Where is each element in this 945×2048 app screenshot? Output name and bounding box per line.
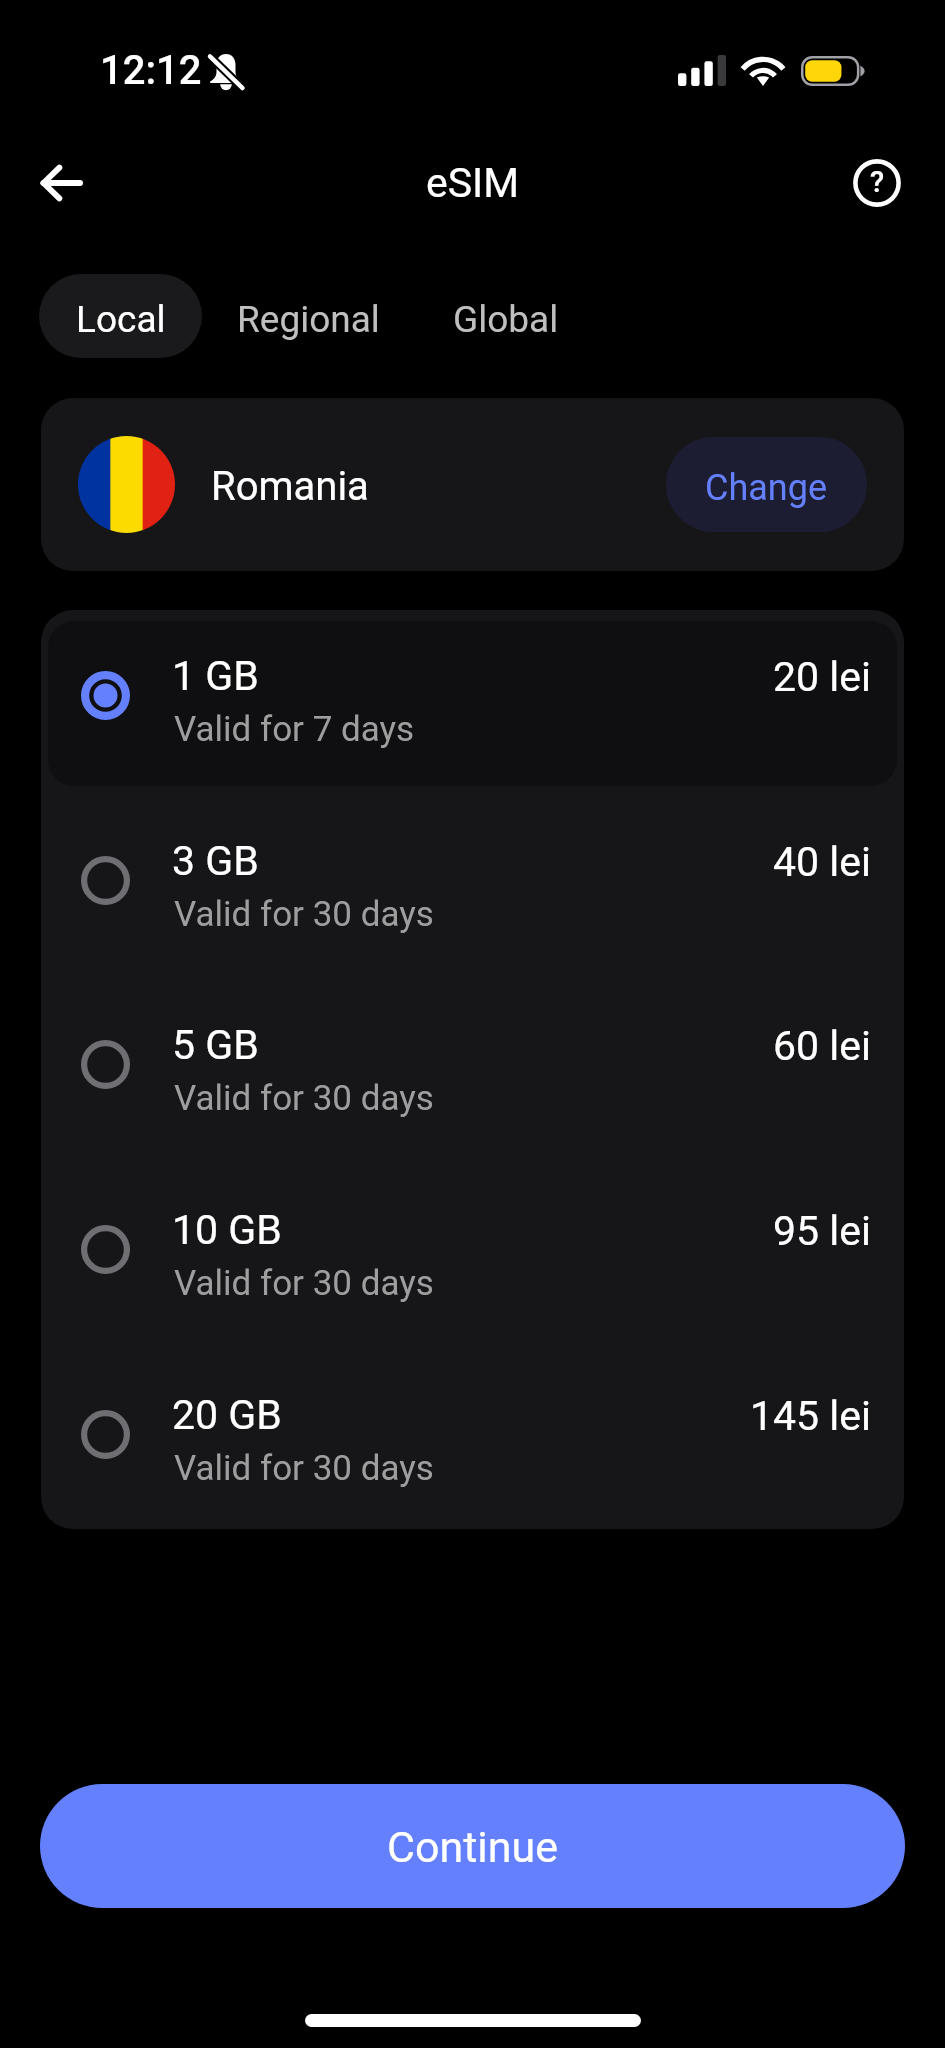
staticText: Global xyxy=(453,298,559,341)
staticText: Change xyxy=(705,467,828,509)
button[interactable]: Romania xyxy=(41,398,904,571)
staticText: Valid for 30 days xyxy=(174,1448,434,1489)
button[interactable]: Continue xyxy=(40,1784,905,1908)
staticText: 5 GB xyxy=(172,1021,259,1069)
staticText: Valid for 30 days xyxy=(174,894,434,935)
staticText: Romania xyxy=(211,463,369,510)
button[interactable]: Change xyxy=(666,437,867,532)
staticText: 40 lei xyxy=(773,838,871,886)
staticText: 20 lei xyxy=(773,653,871,701)
staticText: 95 lei xyxy=(773,1207,871,1255)
staticText: Valid for 7 days xyxy=(174,709,415,750)
button[interactable]: Help xyxy=(841,147,913,219)
staticText: 60 lei xyxy=(773,1022,871,1070)
staticText: Valid for 30 days xyxy=(174,1263,434,1304)
staticText: Regional xyxy=(237,298,380,341)
staticText: 1 GB xyxy=(172,652,259,700)
staticText: ? xyxy=(870,165,885,199)
staticText: eSIM xyxy=(426,159,520,207)
button[interactable]: Regional xyxy=(202,274,419,358)
staticText: Local xyxy=(76,298,166,341)
staticText: Continue xyxy=(387,1822,559,1872)
staticText: 12:12 xyxy=(100,47,202,94)
button[interactable]: 3 GB xyxy=(41,795,904,979)
staticText: Valid for 30 days xyxy=(174,1078,434,1119)
staticText: 20 GB xyxy=(172,1391,282,1439)
button[interactable]: Back xyxy=(18,140,104,225)
button[interactable]: Local xyxy=(39,274,202,358)
button[interactable]: Global xyxy=(419,274,601,358)
staticText: 145 lei xyxy=(750,1392,871,1440)
button[interactable]: 1 GB xyxy=(41,610,904,786)
staticText: 3 GB xyxy=(172,837,259,885)
button[interactable]: 20 GB xyxy=(41,1349,904,1529)
button[interactable]: 5 GB xyxy=(41,979,904,1164)
button[interactable]: 10 GB xyxy=(41,1164,904,1349)
staticText: 10 GB xyxy=(172,1206,282,1254)
